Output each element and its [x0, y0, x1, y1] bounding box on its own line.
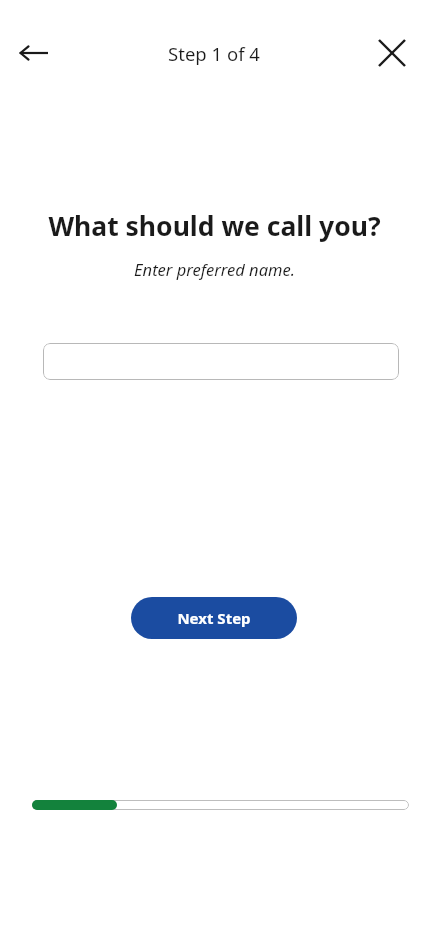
button[interactable]: [43, 343, 399, 380]
staticText: Enter preferred name.: [134, 258, 295, 280]
button[interactable]: Back: [10, 37, 58, 69]
staticText: What should we call you?: [48, 208, 381, 244]
button[interactable]: Next Step: [131, 597, 297, 639]
button[interactable]: Close: [372, 33, 412, 73]
staticText: Step 1 of 4: [168, 41, 260, 66]
staticText: Next Step: [177, 608, 251, 628]
